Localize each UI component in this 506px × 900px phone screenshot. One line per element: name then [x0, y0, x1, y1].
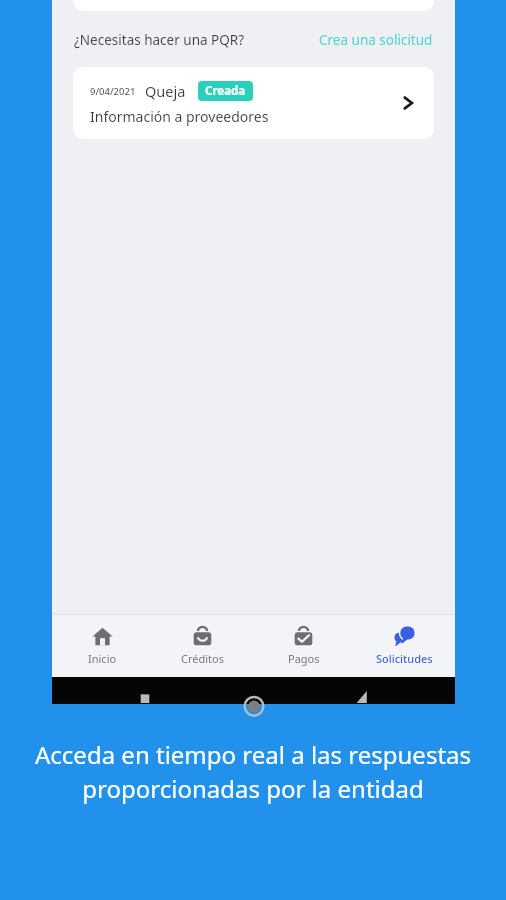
button[interactable]: 9/04/2021 [73, 67, 434, 139]
staticText: Crea una solicitud [319, 31, 433, 49]
staticText: 9/04/2021 [90, 85, 136, 98]
other: Ver detalle [400, 95, 416, 111]
staticText: ¿Necesitas hacer una PQR? [74, 31, 245, 49]
button[interactable]: Inicio [52, 615, 152, 677]
button[interactable]: Solicitudes [354, 615, 455, 677]
staticText: Acceda en tiempo real a las respuestas p… [22, 738, 484, 805]
staticText: Queja [145, 81, 186, 101]
staticText: Solicitudes [376, 651, 433, 666]
button[interactable]: Créditos [152, 615, 253, 677]
staticText: Creada [205, 83, 246, 99]
button[interactable]: Pagos [253, 615, 354, 677]
staticText: Inicio [88, 651, 117, 666]
staticText: Créditos [181, 651, 224, 666]
button[interactable]: Crea una solicitud [319, 31, 433, 49]
staticText: Pagos [288, 651, 320, 666]
staticText: Información a proveedores [90, 107, 269, 126]
